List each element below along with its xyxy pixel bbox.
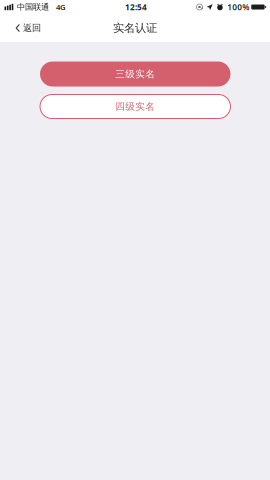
- staticText: 4G: [56, 2, 66, 12]
- staticText: 实名认证: [113, 21, 157, 35]
- staticText: 返回: [23, 22, 41, 34]
- staticText: 100%: [227, 1, 249, 13]
- staticText: 12:54: [125, 1, 147, 13]
- button[interactable]: 返回: [0, 14, 51, 42]
- staticText: 三级实名: [115, 68, 155, 80]
- staticText: 中国联通: [17, 2, 49, 12]
- button[interactable]: 三级实名: [40, 61, 230, 86]
- staticText: 四级实名: [115, 100, 155, 113]
- button[interactable]: 四级实名: [40, 94, 230, 118]
